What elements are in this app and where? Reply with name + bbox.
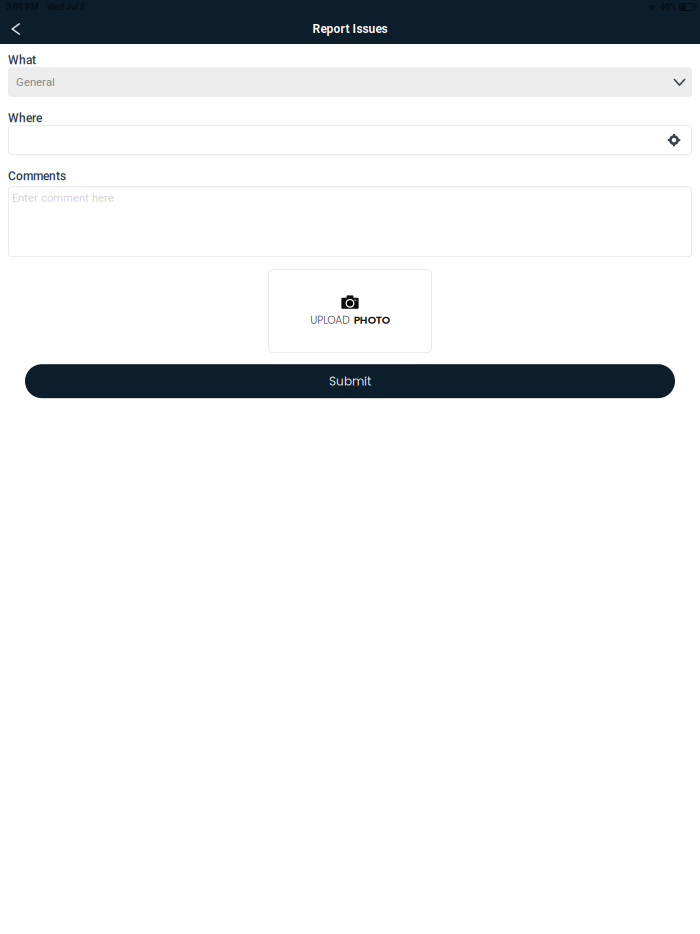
staticText: General [16,75,55,89]
staticText: 3:09 PM [6,2,39,12]
staticText: Enter comment here [12,191,114,204]
staticText: 40% [660,1,677,12]
staticText: Wed Jul 8 [47,2,85,12]
button[interactable]: Submit [25,364,675,398]
staticText: Submit [329,373,371,390]
button[interactable]: General [8,67,692,97]
button[interactable]: UPLOAD [268,269,432,353]
staticText: Comments [8,169,66,183]
staticText: PHOTO [354,313,390,327]
button[interactable]: Back [0,14,32,44]
staticText: What [8,53,36,67]
button[interactable]: Use current location [662,128,686,152]
staticText: Where [8,111,42,125]
staticText: UPLOAD [310,313,350,327]
staticText: Report Issues [312,22,387,36]
